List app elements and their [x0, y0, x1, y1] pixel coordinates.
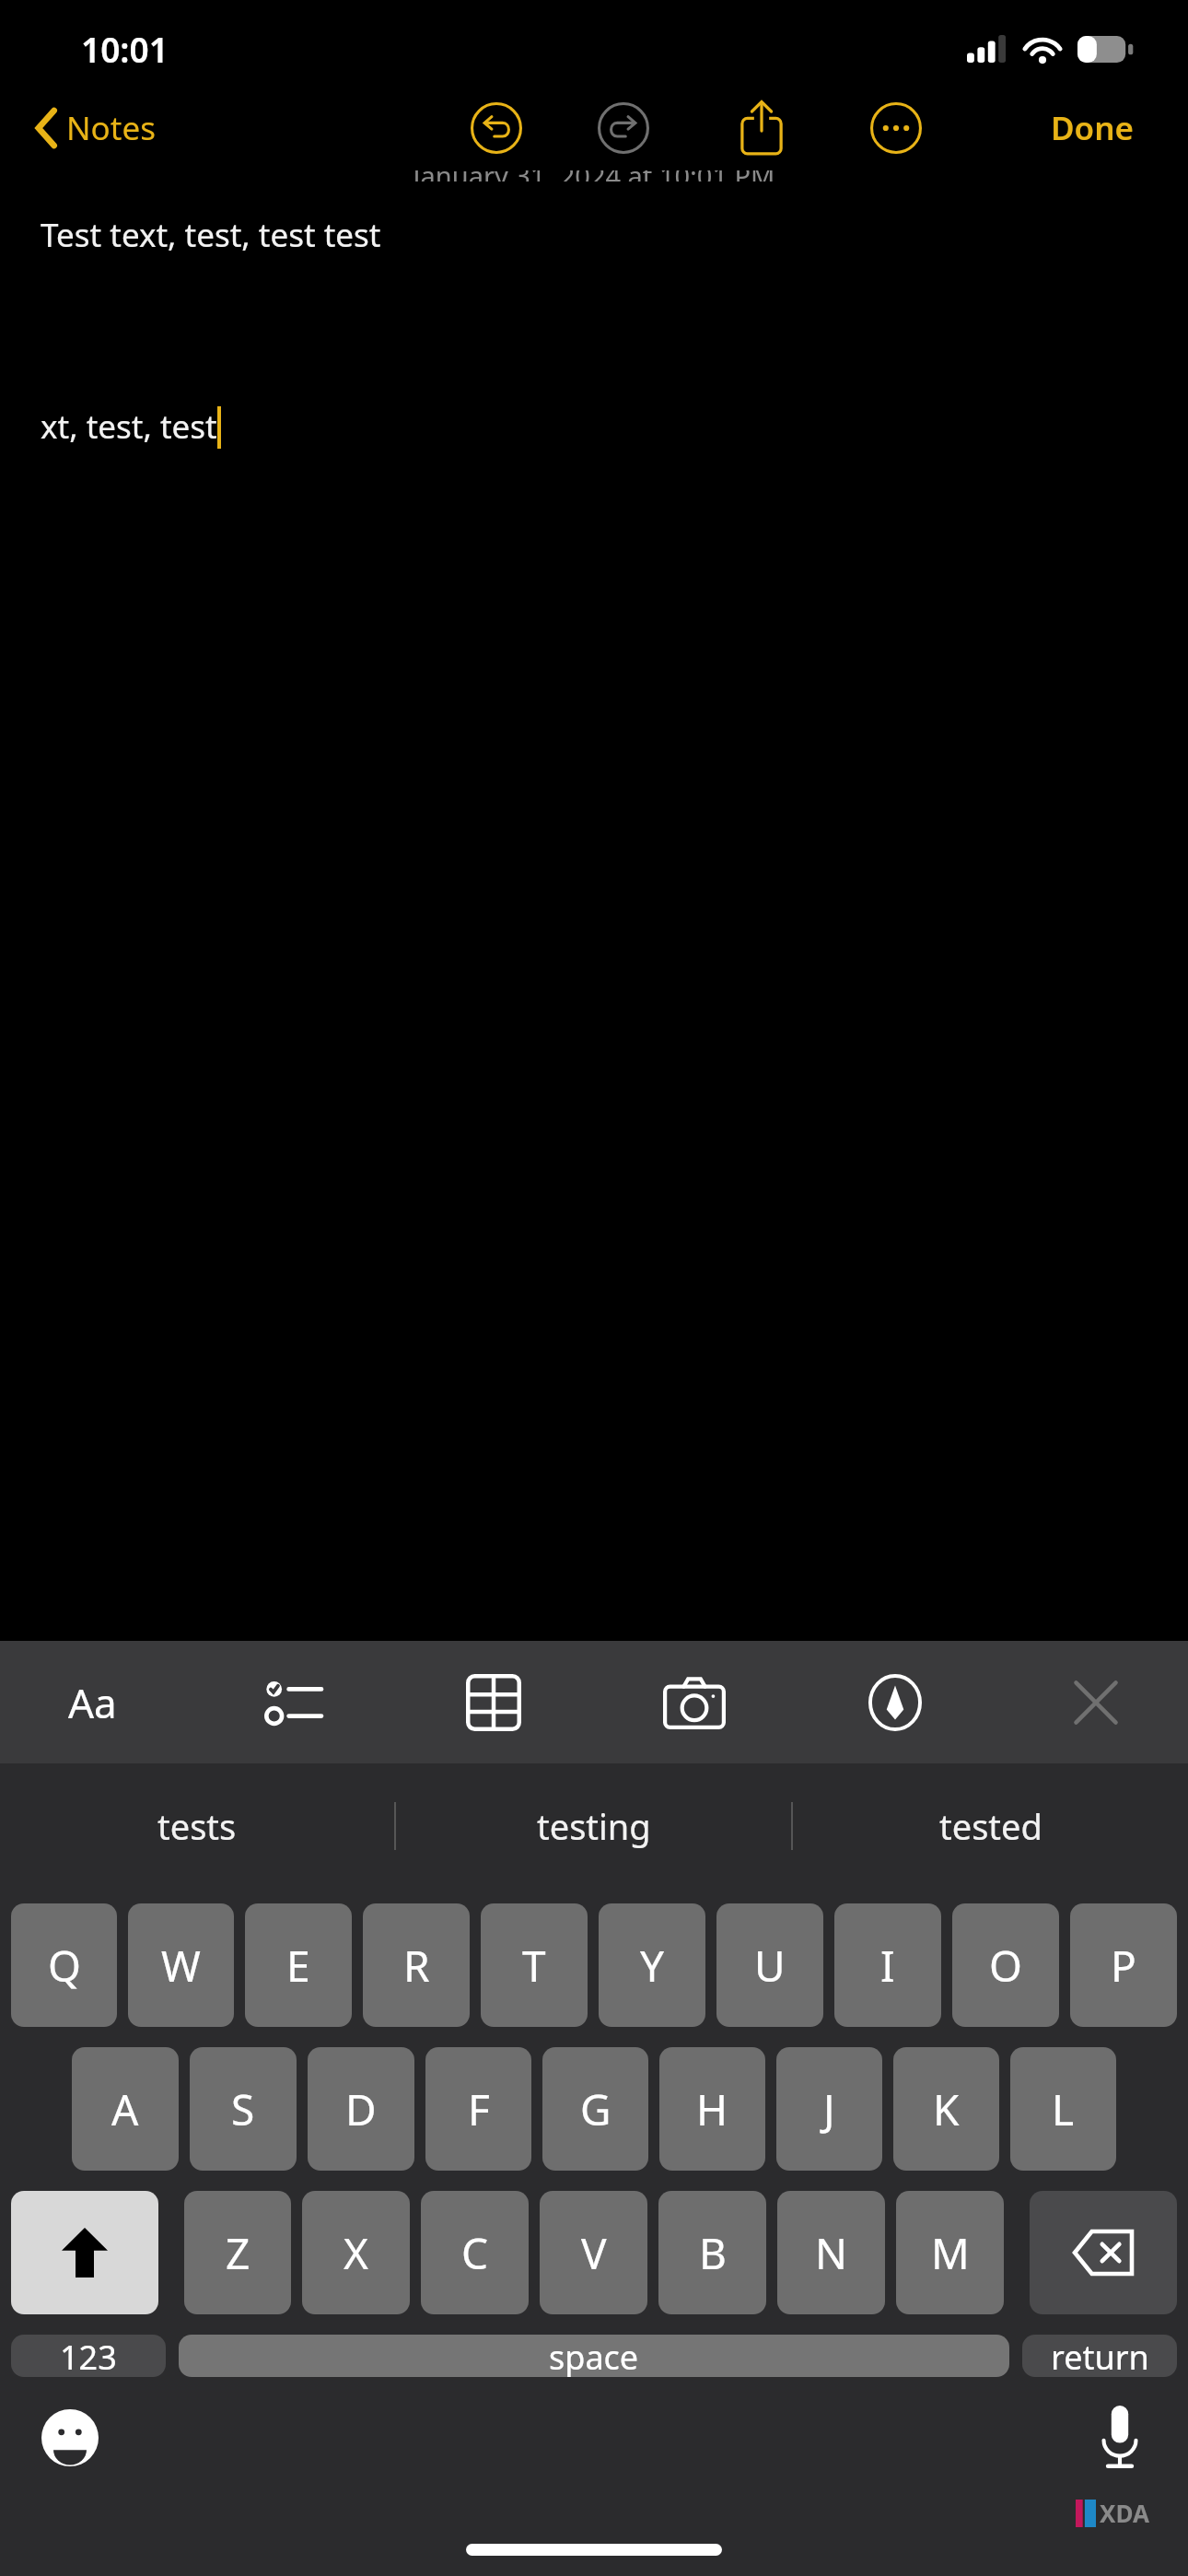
- staticText: XDA: [1100, 2497, 1149, 2529]
- button[interactable]: January 31, 2024 at 10:01 PM: [0, 170, 1188, 1641]
- staticText: O: [989, 1937, 1022, 1995]
- staticText: return: [1051, 2335, 1149, 2377]
- staticText: Y: [640, 1937, 665, 1995]
- button[interactable]: Backspace: [1030, 2191, 1177, 2314]
- staticText: R: [403, 1937, 430, 1995]
- button[interactable]: 123: [11, 2335, 166, 2377]
- button[interactable]: Camera: [650, 1652, 739, 1753]
- button[interactable]: More options: [866, 98, 926, 158]
- button[interactable]: O: [952, 1903, 1059, 2027]
- button[interactable]: Text format: [48, 1652, 136, 1753]
- staticText: Aa: [68, 1675, 117, 1730]
- button[interactable]: Share: [729, 96, 794, 160]
- staticText: D: [345, 2080, 377, 2138]
- staticText: K: [933, 2080, 960, 2138]
- staticText: 123: [60, 2335, 117, 2377]
- button[interactable]: Close: [1052, 1652, 1140, 1753]
- button[interactable]: Undo: [466, 98, 527, 158]
- button[interactable]: F: [425, 2047, 531, 2171]
- staticText: W: [161, 1937, 201, 1995]
- staticText: Done: [1051, 106, 1135, 150]
- button[interactable]: E: [245, 1903, 352, 2027]
- staticText: 10:01: [81, 26, 169, 72]
- button[interactable]: N: [777, 2191, 885, 2314]
- staticText: Test text, test, test test: [41, 213, 381, 257]
- button[interactable]: Checklist: [249, 1652, 337, 1753]
- staticText: E: [286, 1937, 310, 1995]
- staticText: C: [461, 2224, 489, 2282]
- staticText: January 31, 2024 at 10:01 PM: [0, 170, 1188, 181]
- button[interactable]: Shift: [11, 2191, 158, 2314]
- staticText: V: [581, 2224, 607, 2282]
- staticText: H: [696, 2080, 728, 2138]
- button[interactable]: K: [893, 2047, 999, 2171]
- staticText: M: [931, 2224, 970, 2282]
- staticText: xt, test, test: [41, 404, 217, 449]
- button[interactable]: X: [302, 2191, 410, 2314]
- button[interactable]: S: [190, 2047, 297, 2171]
- button[interactable]: Dictation: [1077, 2395, 1162, 2480]
- staticText: N: [815, 2224, 847, 2282]
- button[interactable]: P: [1070, 1903, 1177, 2027]
- button[interactable]: M: [896, 2191, 1004, 2314]
- button[interactable]: Y: [599, 1903, 705, 2027]
- button[interactable]: J: [776, 2047, 882, 2171]
- staticText: U: [754, 1937, 786, 1995]
- staticText: X: [344, 2224, 368, 2282]
- button[interactable]: Emoji: [28, 2395, 112, 2480]
- staticText: tests: [157, 1802, 237, 1850]
- staticText: space: [549, 2335, 639, 2377]
- button[interactable]: T: [481, 1903, 588, 2027]
- button[interactable]: U: [716, 1903, 823, 2027]
- staticText: S: [231, 2080, 255, 2138]
- button[interactable]: space: [179, 2335, 1009, 2377]
- button[interactable]: I: [834, 1903, 941, 2027]
- staticText: G: [580, 2080, 611, 2138]
- staticText: I: [880, 1937, 895, 1995]
- button[interactable]: Z: [184, 2191, 291, 2314]
- button[interactable]: Q: [11, 1903, 117, 2027]
- button[interactable]: H: [659, 2047, 765, 2171]
- staticText: Q: [48, 1937, 81, 1995]
- button[interactable]: Table: [449, 1652, 538, 1753]
- staticText: T: [522, 1937, 546, 1995]
- button[interactable]: C: [421, 2191, 529, 2314]
- staticText: Notes: [66, 106, 156, 150]
- staticText: tested: [939, 1802, 1042, 1850]
- button[interactable]: tests: [0, 1763, 394, 1889]
- button[interactable]: L: [1010, 2047, 1116, 2171]
- button[interactable]: D: [308, 2047, 414, 2171]
- button[interactable]: return: [1022, 2335, 1177, 2377]
- button[interactable]: G: [542, 2047, 648, 2171]
- button[interactable]: Done: [1045, 99, 1140, 158]
- staticText: B: [699, 2224, 727, 2282]
- staticText: testing: [537, 1802, 651, 1850]
- staticText: L: [1052, 2080, 1075, 2138]
- button[interactable]: A: [72, 2047, 179, 2171]
- button[interactable]: tested: [793, 1763, 1188, 1889]
- staticText: J: [823, 2080, 835, 2138]
- button[interactable]: B: [658, 2191, 766, 2314]
- staticText: F: [468, 2080, 490, 2138]
- button[interactable]: Notes: [31, 99, 161, 158]
- button[interactable]: R: [363, 1903, 470, 2027]
- button[interactable]: testing: [396, 1763, 791, 1889]
- button[interactable]: V: [540, 2191, 647, 2314]
- button[interactable]: W: [128, 1903, 234, 2027]
- button[interactable]: Redo: [593, 98, 654, 158]
- button[interactable]: Markup: [851, 1652, 939, 1753]
- staticText: Z: [226, 2224, 250, 2282]
- staticText: P: [1111, 1937, 1136, 1995]
- staticText: A: [111, 2080, 139, 2138]
